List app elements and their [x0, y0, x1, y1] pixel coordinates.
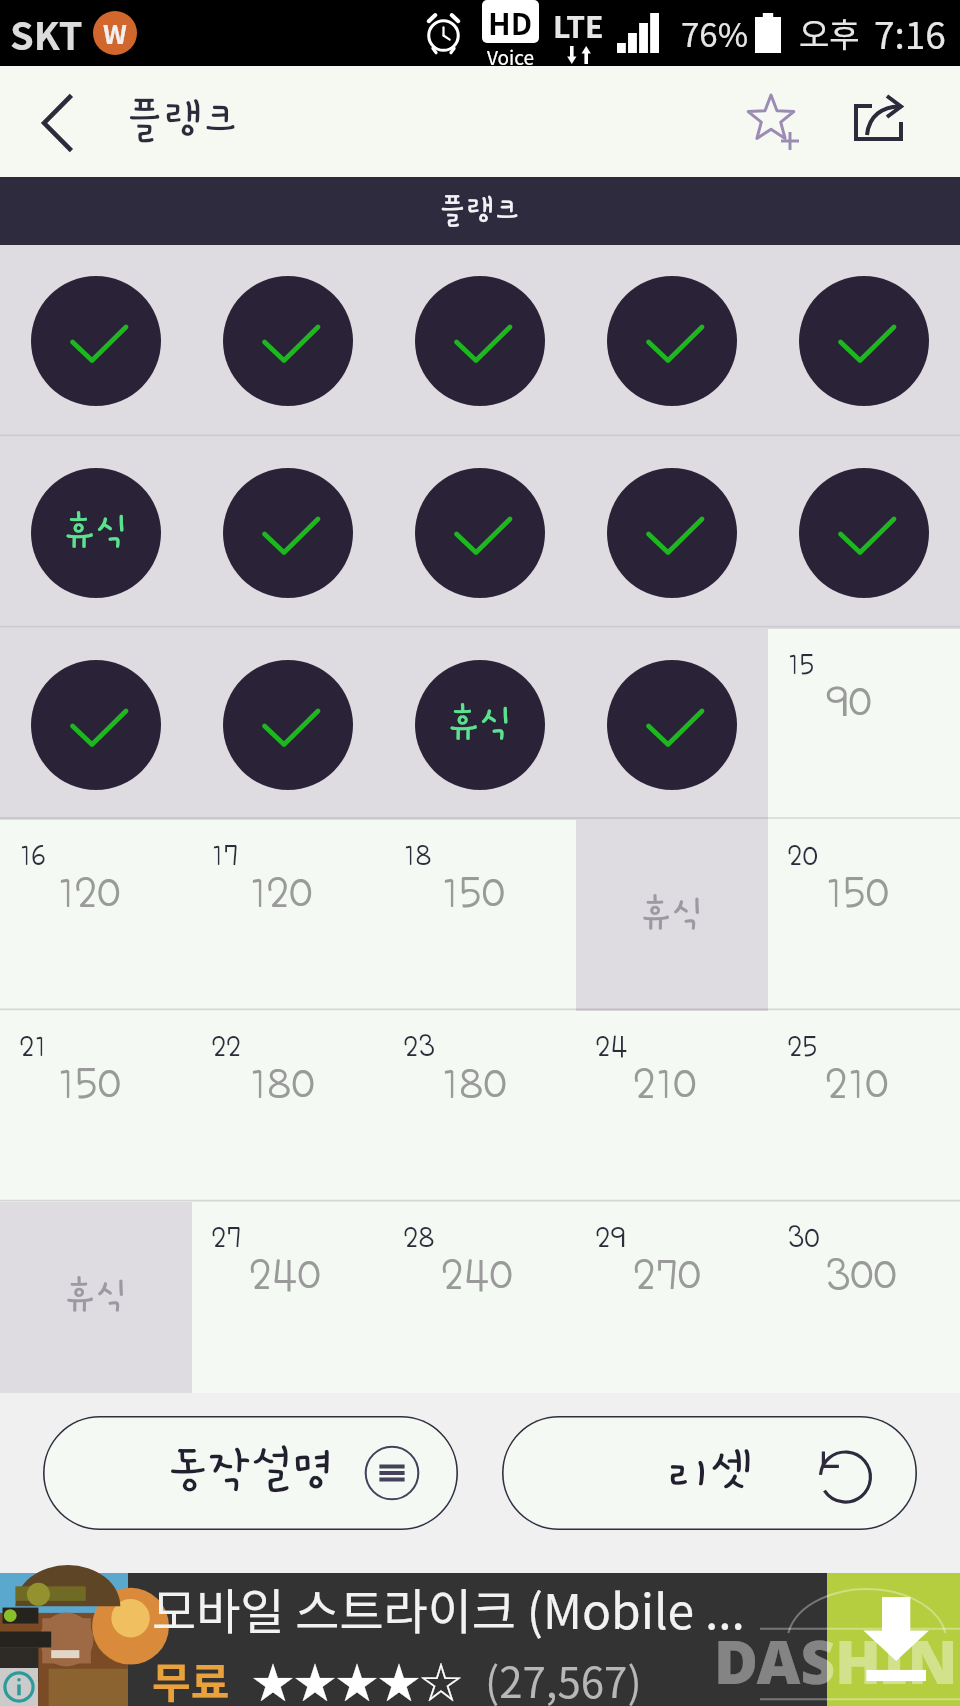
button[interactable]: 휴식: [0, 437, 192, 629]
staticText: HD: [488, 0, 533, 43]
staticText: 210: [826, 1060, 889, 1107]
button[interactable]: [768, 437, 960, 629]
staticText: 240: [442, 1251, 514, 1298]
button[interactable]: [576, 629, 768, 820]
button[interactable]: [0, 245, 192, 437]
button[interactable]: 21: [0, 1011, 192, 1202]
staticText: 90: [826, 678, 872, 725]
staticText: 무료: [152, 1649, 230, 1706]
button[interactable]: [576, 245, 768, 437]
staticText: 21: [20, 1031, 47, 1062]
staticText: W: [103, 14, 127, 52]
button[interactable]: 30: [768, 1202, 960, 1393]
staticText: 270: [634, 1251, 702, 1298]
button[interactable]: 18: [384, 820, 576, 1011]
staticText: 리셋: [668, 1444, 752, 1496]
staticText: 150: [58, 1060, 122, 1107]
staticText: 휴식: [446, 702, 514, 744]
button[interactable]: Back: [0, 66, 118, 179]
staticText: 300: [826, 1251, 898, 1298]
button[interactable]: DASHIN: [0, 1573, 960, 1706]
button[interactable]: [384, 437, 576, 629]
staticText: 120: [250, 869, 313, 916]
staticText: ★★★★☆: [252, 1649, 463, 1706]
button[interactable]: 24: [576, 1011, 768, 1202]
staticText: 150: [442, 869, 506, 916]
button[interactable]: 22: [192, 1011, 384, 1202]
staticText: 29: [596, 1222, 627, 1253]
button[interactable]: Add to favorites: [722, 66, 827, 179]
button[interactable]: 휴식: [0, 1202, 192, 1393]
staticText: LTE: [553, 3, 604, 46]
button[interactable]: 동작설명: [43, 1416, 458, 1530]
staticText: 플랭크: [439, 193, 522, 227]
button[interactable]: [192, 437, 384, 629]
button[interactable]: 15: [768, 629, 960, 820]
button[interactable]: 휴식: [384, 629, 576, 820]
staticText: Voice: [487, 43, 535, 66]
staticText: 76%: [681, 9, 749, 57]
staticText: 180: [250, 1060, 315, 1107]
staticText: 150: [826, 869, 890, 916]
staticText: 휴식: [63, 1275, 129, 1316]
staticText: 16: [20, 840, 47, 871]
button[interactable]: 25: [768, 1011, 960, 1202]
button[interactable]: 29: [576, 1202, 768, 1393]
staticText: 25: [788, 1031, 819, 1062]
staticText: 180: [442, 1060, 507, 1107]
button[interactable]: [0, 629, 192, 820]
staticText: 모바일 스트라이크 (Mobile ...: [152, 1573, 745, 1643]
button[interactable]: 23: [384, 1011, 576, 1202]
staticText: 120: [58, 869, 121, 916]
button[interactable]: [768, 245, 960, 437]
staticText: 30: [788, 1222, 821, 1253]
staticText: 동작설명: [167, 1444, 335, 1496]
button[interactable]: 20: [768, 820, 960, 1011]
staticText: 7:16: [874, 6, 946, 60]
staticText: 18: [404, 840, 433, 871]
button[interactable]: [576, 437, 768, 629]
staticText: 23: [404, 1031, 436, 1062]
staticText: 240: [250, 1251, 322, 1298]
button[interactable]: 27: [192, 1202, 384, 1393]
staticText: 휴식: [62, 510, 130, 552]
button[interactable]: 17: [192, 820, 384, 1011]
staticText: 20: [788, 840, 819, 871]
button[interactable]: Share: [827, 66, 932, 179]
staticText: 15: [788, 649, 816, 680]
staticText: 24: [596, 1031, 629, 1062]
staticText: 28: [404, 1222, 436, 1253]
staticText: 17: [212, 840, 239, 871]
button[interactable]: 리셋: [502, 1416, 917, 1530]
staticText: DASHIN: [714, 1620, 958, 1702]
staticText: 27: [212, 1222, 242, 1253]
button[interactable]: [384, 245, 576, 437]
staticText: SKT: [10, 6, 83, 61]
button[interactable]: [192, 245, 384, 437]
staticText: 22: [212, 1031, 242, 1062]
staticText: 플랭크: [126, 96, 240, 143]
button[interactable]: 28: [384, 1202, 576, 1393]
button[interactable]: [192, 629, 384, 820]
button[interactable]: 16: [0, 820, 192, 1011]
staticText: (27,567): [485, 1649, 642, 1706]
staticText: 휴식: [639, 893, 705, 934]
staticText: 210: [634, 1060, 697, 1107]
button[interactable]: 휴식: [576, 820, 768, 1011]
staticText: 오후: [799, 9, 860, 57]
